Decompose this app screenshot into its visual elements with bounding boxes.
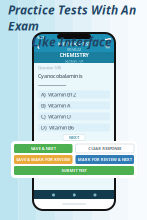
staticText: CLEAR RESPONSE bbox=[88, 146, 121, 151]
staticText: 9:41 bbox=[37, 35, 44, 40]
staticText: SAVE & NEXT bbox=[31, 146, 56, 151]
staticText: A) Vitamin B12 bbox=[41, 91, 76, 98]
button[interactable]: D) Vitamin B6 bbox=[38, 123, 110, 131]
staticText: C) Vitamin D bbox=[41, 113, 71, 120]
button[interactable]: C) Vitamin D bbox=[38, 112, 110, 120]
button[interactable]: SAVE & MARK FOR REVIEW bbox=[14, 155, 72, 164]
button[interactable]: NEXT bbox=[63, 134, 85, 140]
staticText: D) Vitamin B6 bbox=[41, 124, 74, 131]
staticText: ● bbox=[72, 192, 75, 197]
staticText: ● bbox=[52, 192, 55, 197]
staticText: ≡ bbox=[105, 43, 111, 50]
button[interactable]: MARK FOR REVIEW & NEXT bbox=[75, 155, 134, 164]
staticText: MARK FOR REVIEW & NEXT bbox=[78, 157, 132, 162]
staticText: 00:58:22 bbox=[67, 46, 81, 52]
staticText: NEXT bbox=[69, 135, 79, 140]
button[interactable]: Back bbox=[37, 42, 46, 51]
staticText: ‹ bbox=[37, 41, 40, 52]
staticText: CHEMISTRY bbox=[59, 51, 88, 58]
staticText: Question 1/30 bbox=[38, 65, 61, 70]
staticText: NEET MOCK TEST bbox=[58, 41, 90, 46]
staticText: Practice Tests With An Exam bbox=[8, 2, 136, 34]
staticText: Cyanocobalamin is ______________ bbox=[38, 72, 83, 86]
button[interactable]: B) Vitamin A bbox=[38, 101, 110, 109]
button[interactable]: CLEAR RESPONSE bbox=[75, 144, 134, 153]
staticText: ● bbox=[93, 192, 96, 197]
staticText: SAVE & MARK FOR REVIEW bbox=[16, 157, 70, 162]
button[interactable]: SAVE & NEXT bbox=[14, 144, 72, 153]
staticText: SUBMIT TEST bbox=[61, 168, 86, 173]
staticText: Like Interface bbox=[32, 34, 112, 50]
button[interactable]: Menu bbox=[102, 42, 111, 51]
staticText: B) Vitamin A bbox=[41, 102, 70, 109]
staticText: ▂▃ bbox=[105, 35, 111, 40]
button[interactable]: A) Vitamin B12 bbox=[38, 90, 110, 98]
staticText: Section - 01 bbox=[64, 58, 83, 64]
button[interactable]: SUBMIT TEST bbox=[14, 166, 134, 175]
